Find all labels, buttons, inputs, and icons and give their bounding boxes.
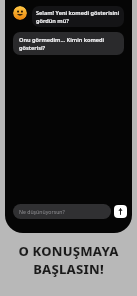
staticText: O KONUŞMAYA — [18, 242, 119, 260]
staticText: Selam! Yeni komedi gösterisini gördün mü… — [36, 9, 120, 24]
button[interactable]: Gönder — [114, 205, 127, 218]
button[interactable]: Ne düşünüyorsun? — [13, 204, 111, 219]
button[interactable]: Onu görmedim... Kimin komedi gösterisi? — [13, 32, 124, 55]
other: Profil resmi — [13, 6, 27, 20]
staticText: BAŞLASIN! — [33, 260, 104, 278]
staticText: Onu görmedim... Kimin komedi gösterisi? — [19, 36, 118, 51]
button[interactable]: Profil resmi — [13, 6, 124, 27]
staticText: Ne düşünüyorsun? — [19, 208, 65, 215]
